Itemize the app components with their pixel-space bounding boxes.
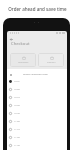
staticText: 10:45: [14, 112, 20, 115]
staticText: Checkout: [11, 41, 30, 47]
staticText: 11:00: [14, 120, 20, 123]
button[interactable]: Close: [9, 73, 12, 76]
button[interactable]: Takeaway: [10, 53, 36, 67]
button[interactable]: 10:00: [9, 85, 67, 93]
button[interactable]: 11:30: [9, 133, 67, 141]
button[interactable]: Delivery: [38, 53, 64, 67]
button[interactable]: 11:15: [9, 125, 67, 133]
button[interactable]: ASAP: [9, 77, 67, 85]
staticText: 11:15: [14, 128, 20, 131]
staticText: 10:30: [14, 104, 20, 107]
button[interactable]: 11:00: [9, 117, 67, 125]
staticText: 11:30: [14, 136, 20, 139]
button[interactable]: 10:30: [9, 101, 67, 109]
staticText: Delivery: [47, 61, 56, 64]
button[interactable]: 10:15: [9, 93, 67, 101]
staticText: ASAP: [14, 80, 20, 83]
staticText: Takeaway: [18, 61, 29, 64]
staticText: Select collection time: [23, 72, 48, 75]
button[interactable]: Back: [10, 38, 13, 41]
button[interactable]: 11:45: [9, 141, 67, 149]
staticText: Order ahead and save time: [0, 6, 75, 12]
staticText: 11:45: [14, 144, 20, 147]
staticText: 10:00: [14, 88, 20, 91]
button[interactable]: 10:45: [9, 109, 67, 117]
staticText: 10:15: [14, 96, 20, 99]
